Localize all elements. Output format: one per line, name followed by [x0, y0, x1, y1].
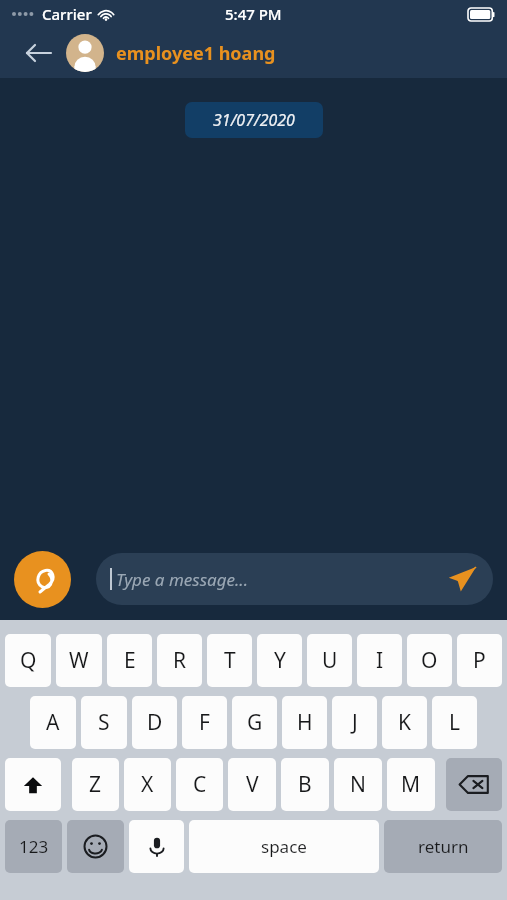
button[interactable]: K	[382, 696, 427, 749]
button[interactable]: P	[457, 634, 502, 687]
staticText: X	[141, 770, 154, 799]
staticText: E	[124, 646, 136, 675]
button[interactable]: O	[407, 634, 452, 687]
button[interactable]: L	[432, 696, 477, 749]
staticText: W	[69, 646, 89, 675]
staticText: 123	[19, 835, 49, 858]
button[interactable]: R	[157, 634, 202, 687]
button[interactable]: space	[189, 820, 379, 873]
staticText: Carrier	[42, 4, 92, 24]
button[interactable]: J	[332, 696, 377, 749]
button[interactable]: employee1 hoang	[66, 34, 276, 72]
staticText: return	[418, 835, 469, 858]
button[interactable]: F	[182, 696, 227, 749]
button[interactable]: U	[307, 634, 352, 687]
button[interactable]: B	[281, 758, 329, 811]
button[interactable]: Backspace	[446, 758, 502, 811]
staticText: U	[322, 646, 338, 675]
staticText: A	[46, 708, 60, 737]
staticText: 5:47 PM	[225, 4, 282, 24]
staticText: B	[298, 770, 312, 799]
staticText: G	[247, 708, 263, 737]
button[interactable]: Emoji	[67, 820, 124, 873]
staticText: space	[261, 835, 307, 858]
button[interactable]: H	[282, 696, 327, 749]
button[interactable]: A	[30, 696, 76, 749]
staticText: R	[173, 646, 187, 675]
staticText: D	[147, 708, 163, 737]
staticText: K	[398, 708, 411, 737]
button[interactable]: Dictation	[129, 820, 184, 873]
button[interactable]: W	[56, 634, 102, 687]
button[interactable]: M	[387, 758, 435, 811]
button[interactable]: T	[207, 634, 252, 687]
staticText: N	[350, 770, 366, 799]
staticText: 31/07/2020	[213, 109, 295, 131]
button[interactable]: Z	[72, 758, 119, 811]
button[interactable]: S	[81, 696, 127, 749]
staticText: Y	[274, 646, 286, 675]
button[interactable]: Q	[5, 634, 51, 687]
button[interactable]: N	[334, 758, 382, 811]
staticText: V	[246, 770, 259, 799]
button[interactable]: E	[107, 634, 152, 687]
button[interactable]: Back	[18, 33, 58, 73]
staticText: F	[199, 708, 210, 737]
staticText: Q	[20, 646, 37, 675]
staticText: employee1 hoang	[116, 41, 276, 66]
button[interactable]: I	[357, 634, 402, 687]
button[interactable]: 123	[5, 820, 62, 873]
button[interactable]: X	[124, 758, 171, 811]
staticText: J	[352, 708, 358, 737]
staticText: T	[224, 646, 236, 675]
button[interactable]: V	[228, 758, 276, 811]
staticText: M	[401, 770, 421, 799]
staticText: I	[376, 646, 384, 675]
button[interactable]: 31/07/2020	[185, 102, 323, 138]
button[interactable]: D	[132, 696, 177, 749]
button[interactable]: Send	[445, 562, 479, 596]
button[interactable]: Type a message...	[96, 553, 493, 605]
button[interactable]: C	[176, 758, 223, 811]
staticText: Z	[89, 770, 102, 799]
staticText: H	[297, 708, 313, 737]
staticText: O	[421, 646, 438, 675]
button[interactable]: Shift	[5, 758, 61, 811]
staticText: Type a message...	[116, 568, 445, 591]
staticText: P	[473, 646, 486, 675]
staticText: L	[449, 708, 461, 737]
button[interactable]: return	[384, 820, 502, 873]
button[interactable]: Attach file	[14, 551, 71, 608]
button[interactable]: Y	[257, 634, 302, 687]
staticText: S	[98, 708, 110, 737]
staticText: C	[193, 770, 207, 799]
button[interactable]: G	[232, 696, 277, 749]
